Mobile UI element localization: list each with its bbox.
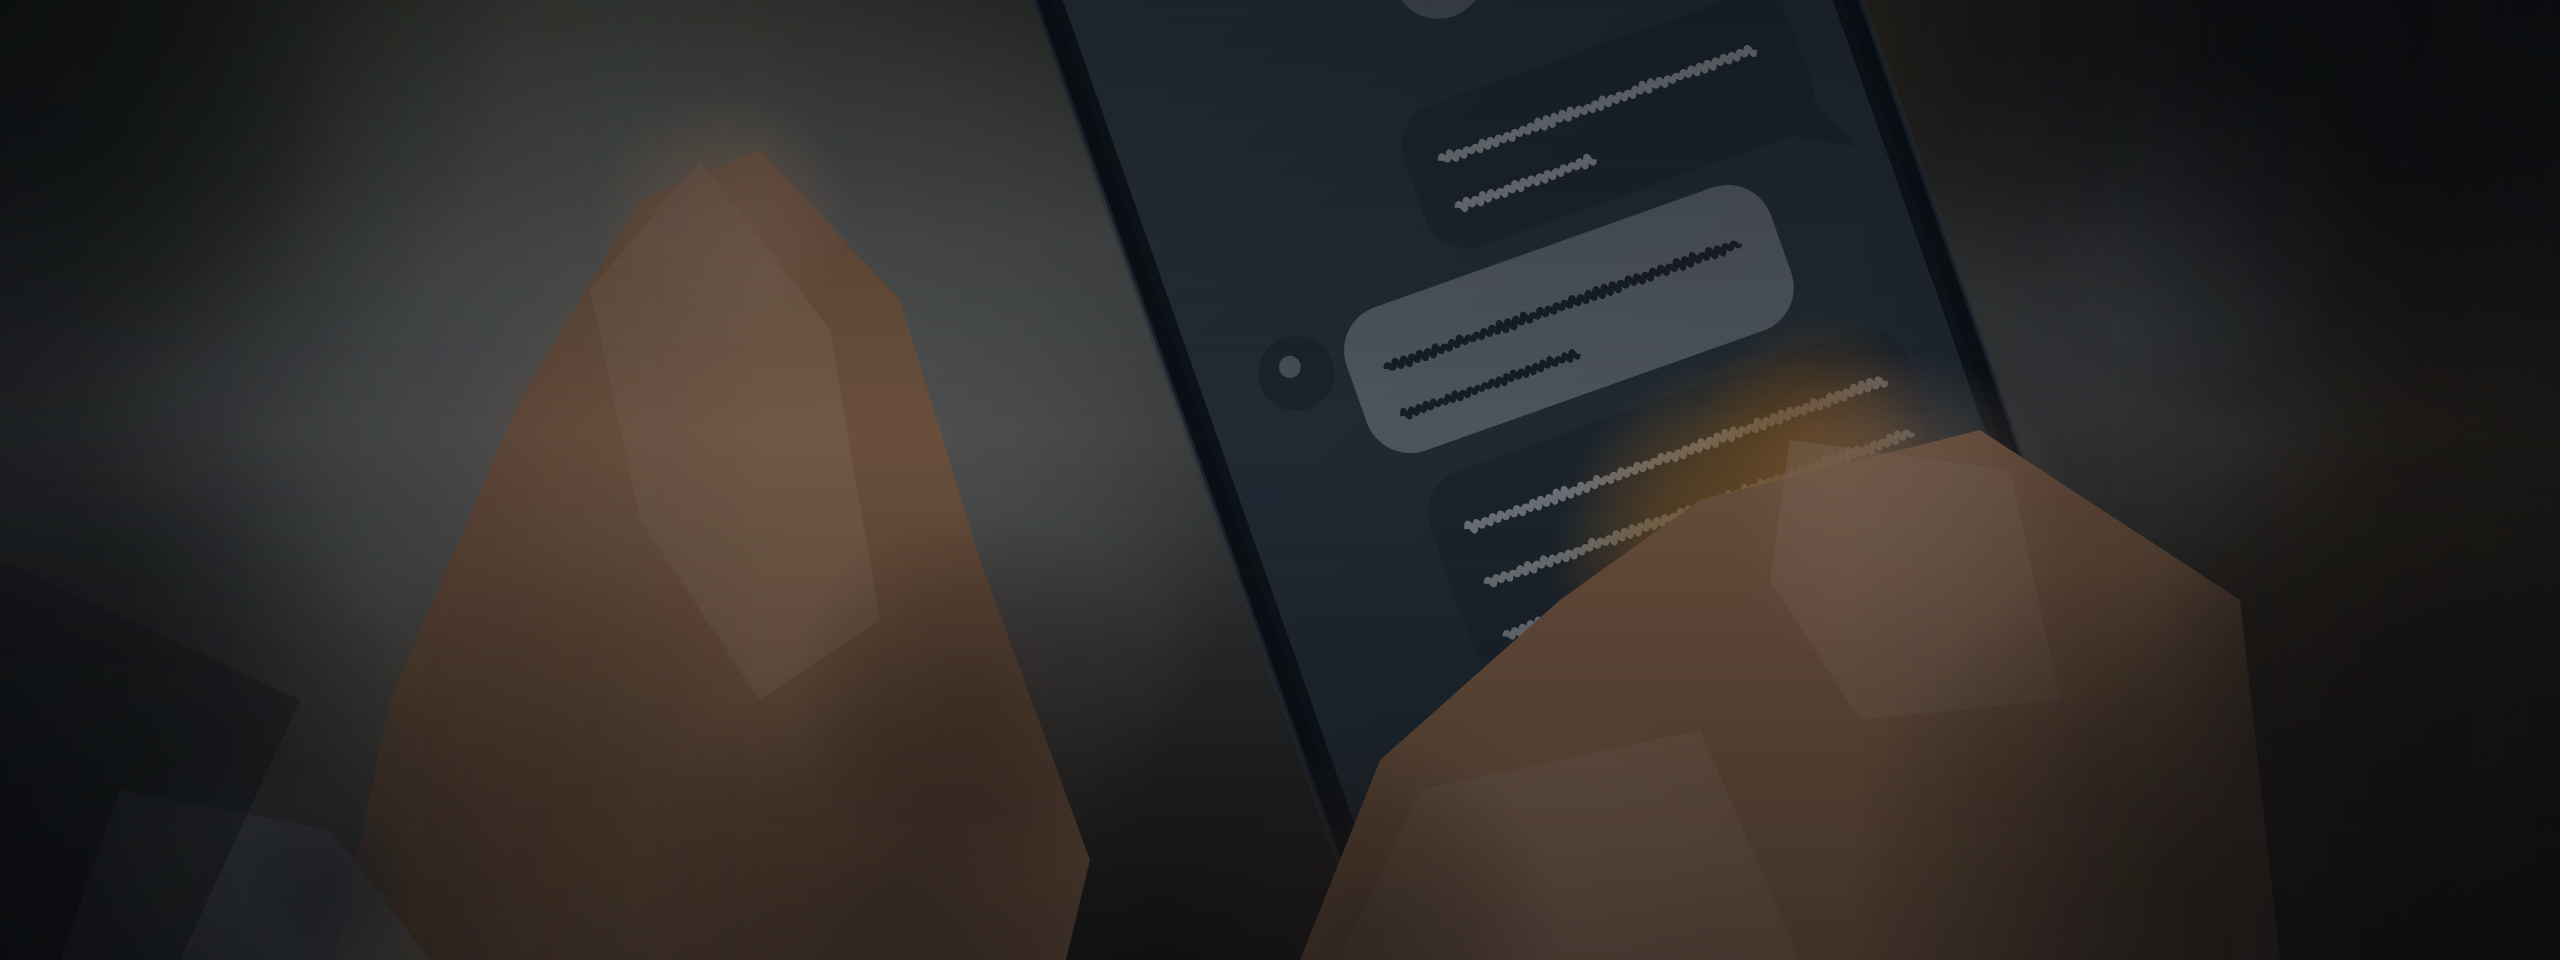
button[interactable]: Chat conversation on phone <box>0 0 2560 960</box>
